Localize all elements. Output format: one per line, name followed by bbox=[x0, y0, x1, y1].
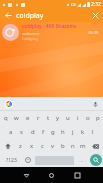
button[interactable]: i bbox=[73, 111, 83, 125]
button[interactable]: c bbox=[37, 139, 48, 153]
staticText: y bbox=[56, 114, 60, 122]
button[interactable]: g bbox=[48, 125, 58, 139]
button[interactable]: Voice input bbox=[91, 100, 99, 108]
button[interactable]: ?123 bbox=[0, 153, 22, 167]
staticText: t bbox=[47, 114, 50, 122]
button[interactable]: f bbox=[38, 125, 48, 139]
button[interactable]: Google bbox=[5, 100, 13, 108]
button[interactable]: Backspace bbox=[88, 139, 103, 153]
button[interactable]: h bbox=[58, 125, 68, 139]
staticText: s bbox=[20, 128, 23, 136]
staticText: h bbox=[61, 128, 65, 136]
staticText: z bbox=[19, 142, 22, 150]
button[interactable]: u bbox=[63, 111, 73, 125]
staticText: m bbox=[80, 142, 86, 150]
staticText: k bbox=[81, 128, 85, 136]
staticText: c bbox=[41, 142, 44, 150]
button[interactable]: e bbox=[22, 111, 33, 125]
staticText: Coldplay bbox=[22, 36, 39, 41]
staticText: x bbox=[30, 142, 34, 150]
button[interactable]: Emoji bbox=[22, 153, 34, 167]
button[interactable]: . bbox=[75, 153, 88, 167]
button[interactable]: coldplay - 469 Shazams bbox=[0, 22, 103, 42]
button[interactable]: q bbox=[0, 111, 11, 125]
button[interactable]: t bbox=[43, 111, 53, 125]
button[interactable]: Clear bbox=[87, 9, 103, 22]
button[interactable]: Search bbox=[90, 154, 102, 166]
button[interactable]: y bbox=[53, 111, 63, 125]
staticText: p bbox=[96, 114, 100, 122]
staticText: a bbox=[9, 128, 13, 136]
button[interactable]: k bbox=[78, 125, 88, 139]
button[interactable]: r bbox=[33, 111, 43, 125]
staticText: . bbox=[81, 156, 83, 164]
staticText: g bbox=[51, 128, 55, 136]
staticText: u bbox=[66, 114, 70, 122]
staticText: o bbox=[86, 114, 90, 122]
button[interactable]: Back bbox=[19, 168, 33, 182]
button[interactable]: w bbox=[11, 111, 22, 125]
button[interactable]: j bbox=[68, 125, 78, 139]
staticText: q bbox=[4, 114, 8, 122]
button[interactable]: Shift bbox=[0, 139, 15, 153]
staticText: j bbox=[72, 128, 74, 136]
button[interactable]: s bbox=[16, 125, 27, 139]
button[interactable]: Recents bbox=[70, 168, 84, 182]
button[interactable]: d bbox=[27, 125, 38, 139]
button[interactable]: x bbox=[26, 139, 37, 153]
staticText: 2:32 bbox=[91, 1, 101, 8]
staticText: coldplay - 469 Shazams bbox=[22, 23, 77, 30]
staticText: w bbox=[14, 114, 19, 122]
staticText: i bbox=[77, 114, 79, 122]
staticText: n bbox=[71, 142, 75, 150]
button[interactable]: a bbox=[5, 125, 16, 139]
staticText: d bbox=[31, 128, 35, 136]
staticText: l bbox=[92, 128, 94, 136]
staticText: 08:39 bbox=[88, 30, 99, 35]
staticText: r bbox=[37, 114, 40, 122]
button[interactable]: b bbox=[58, 139, 68, 153]
staticText: f bbox=[42, 128, 45, 136]
button[interactable]: l bbox=[88, 125, 98, 139]
staticText: e bbox=[26, 114, 30, 122]
staticText: coldplay bbox=[16, 11, 87, 21]
button[interactable]: p bbox=[93, 111, 103, 125]
staticText: LTE bbox=[71, 3, 76, 7]
button[interactable]: o bbox=[83, 111, 93, 125]
button[interactable]: m bbox=[78, 139, 88, 153]
button[interactable]: n bbox=[68, 139, 78, 153]
button[interactable]: z bbox=[15, 139, 26, 153]
button[interactable]: Home bbox=[44, 168, 58, 182]
staticText: b bbox=[61, 142, 65, 150]
staticText: unknown bbox=[22, 31, 40, 36]
button[interactable]: Back bbox=[0, 9, 16, 22]
staticText: ?123 bbox=[6, 157, 17, 164]
staticText: v bbox=[51, 142, 55, 150]
button[interactable]: v bbox=[48, 139, 58, 153]
